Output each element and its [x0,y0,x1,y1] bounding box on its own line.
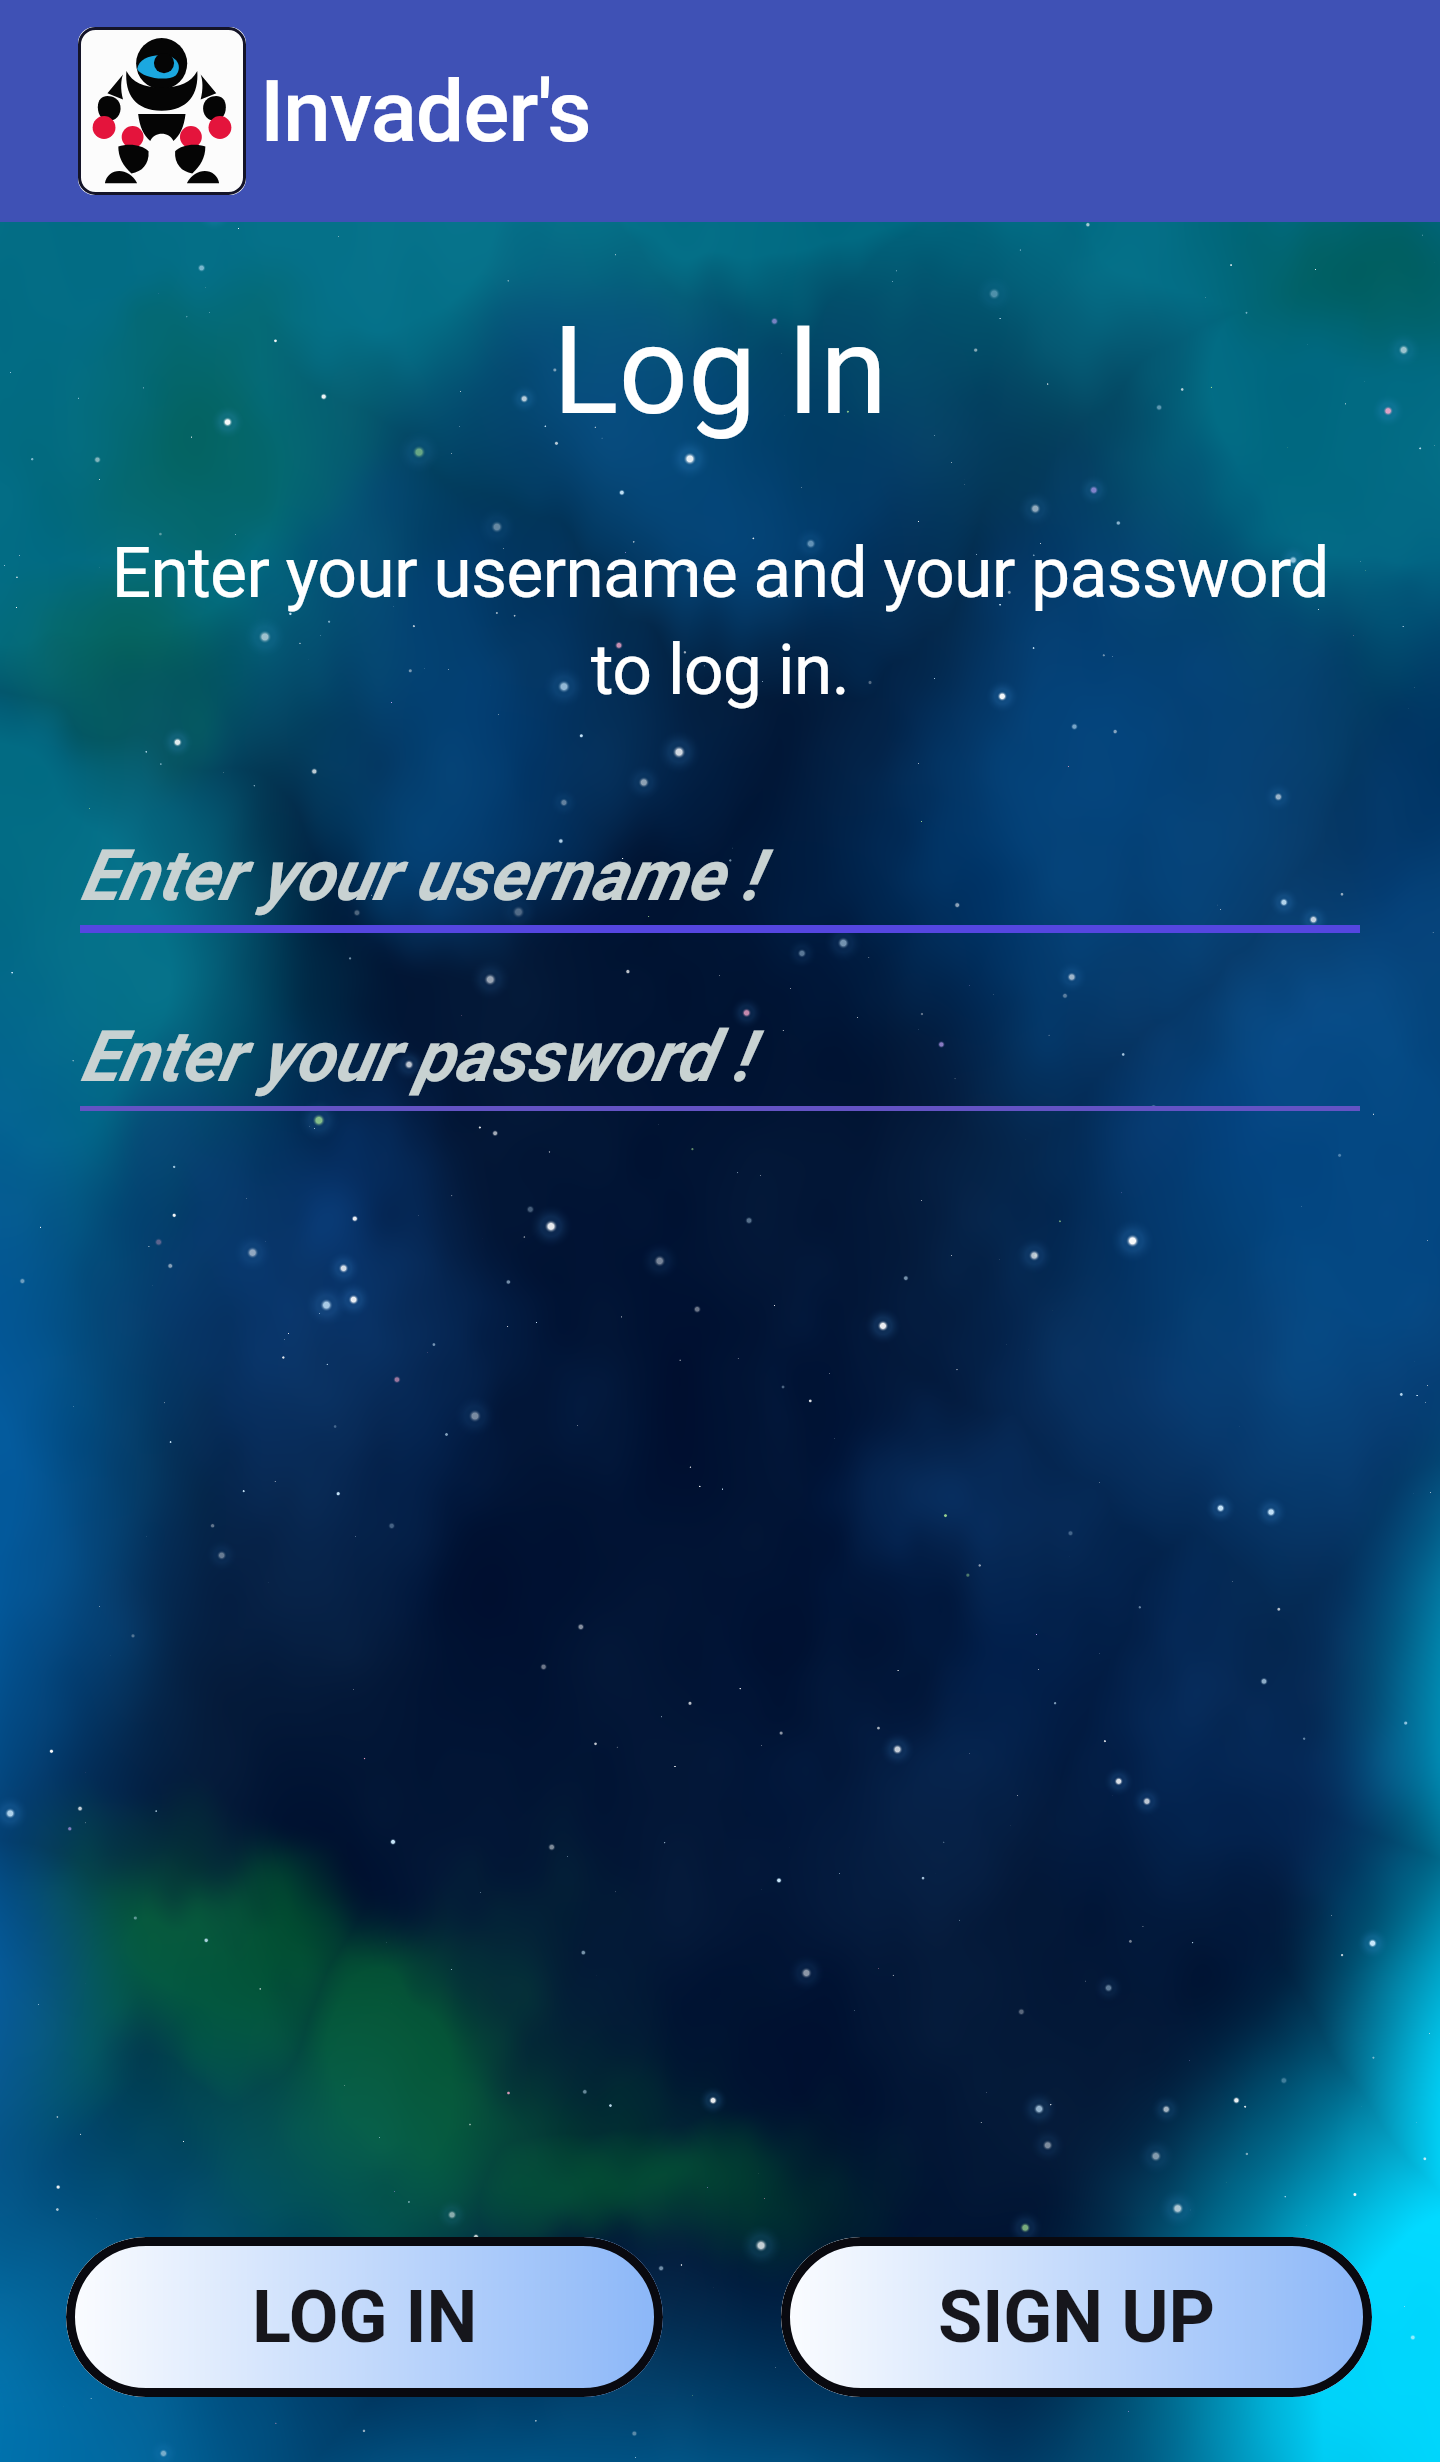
staticText: Log In [0,300,1440,443]
staticText: Enter your password ! [80,1015,751,1098]
button[interactable]: SIGN UP [781,2237,1372,2397]
staticText: LOG IN [252,2275,478,2359]
button[interactable]: LOG IN [66,2237,663,2397]
staticText: Invader's [260,61,591,162]
staticText: SIGN UP [938,2275,1215,2359]
staticText: Enter your username and your password to… [40,532,1400,711]
button[interactable]: Enter your username ! [0,834,1440,933]
button[interactable]: Enter your password ! [0,1015,1440,1111]
button[interactable]: Invader's app logo [78,27,246,195]
staticText: Enter your username ! [80,834,760,917]
